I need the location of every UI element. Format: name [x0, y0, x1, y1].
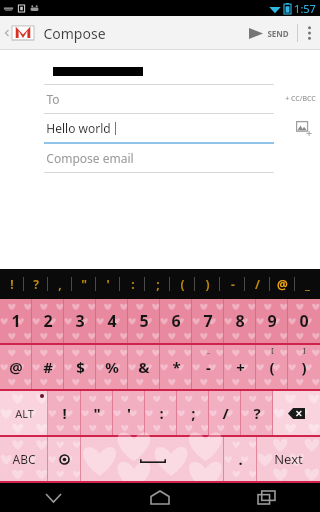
button[interactable]: 5 — [128, 299, 160, 343]
button[interactable]: + CC/BCC — [285, 94, 316, 104]
button[interactable]: 8 — [224, 299, 256, 343]
staticText: [ — [271, 346, 274, 356]
button[interactable]: @ — [0, 345, 32, 389]
staticText: @ — [9, 357, 23, 377]
button[interactable]: 6 — [160, 299, 192, 343]
staticText: SEND — [267, 28, 289, 39]
button[interactable]: + — [224, 345, 256, 389]
staticText: ) — [205, 276, 210, 292]
button[interactable]: % — [96, 345, 128, 389]
button[interactable]: Compose — [2, 22, 110, 44]
button[interactable]: Emoji — [48, 437, 81, 481]
button[interactable]: ; — [145, 269, 170, 299]
staticText: Next — [274, 450, 303, 468]
button[interactable]: ( — [256, 345, 288, 389]
staticText: 8 — [235, 310, 245, 332]
staticText: @ — [277, 276, 288, 292]
staticText: 6 — [171, 310, 181, 332]
button[interactable]: 3 — [64, 299, 96, 343]
button[interactable]: Hide keyboard — [0, 483, 106, 512]
staticText: , — [58, 276, 62, 292]
staticText: 2 — [43, 310, 53, 332]
staticText: 1 — [11, 310, 21, 332]
staticText: ) — [301, 357, 307, 377]
staticText: Compose email — [46, 150, 134, 166]
button[interactable]: : — [120, 269, 145, 299]
button[interactable]: , — [48, 269, 72, 299]
button[interactable]: # — [32, 345, 64, 389]
button[interactable]: ? — [241, 391, 273, 435]
staticText: 4 — [107, 310, 117, 332]
button[interactable]: " — [81, 391, 113, 435]
button[interactable]: _ — [295, 269, 320, 299]
staticText: ; — [191, 403, 196, 423]
button[interactable]: ; — [177, 391, 209, 435]
button[interactable]: 7 — [192, 299, 224, 343]
staticText: " — [81, 276, 87, 292]
staticText: + — [236, 357, 245, 377]
staticText: * — [172, 357, 181, 377]
staticText: # — [43, 357, 53, 377]
staticText: 5 — [139, 310, 149, 332]
button[interactable]: ) — [195, 269, 220, 299]
staticText: ' — [127, 403, 131, 423]
button[interactable]: ( — [170, 269, 195, 299]
button[interactable]: Recent apps — [213, 483, 320, 512]
button[interactable]: ALT — [0, 391, 48, 435]
button[interactable]: Home — [106, 483, 213, 512]
staticText: % — [105, 357, 119, 377]
button[interactable]: / — [245, 269, 270, 299]
staticText: & — [138, 357, 150, 377]
button[interactable]: Next — [257, 437, 320, 481]
staticText: ' — [106, 276, 110, 292]
button[interactable]: . — [224, 437, 257, 481]
staticText: ! — [62, 403, 67, 423]
staticText: ABC — [12, 451, 36, 467]
staticText: : — [131, 276, 135, 292]
button[interactable]: To — [0, 85, 320, 113]
button[interactable]: ) — [288, 345, 320, 389]
staticText: Hello world — [46, 120, 111, 136]
button[interactable]: - — [220, 269, 245, 299]
staticText: 7 — [203, 310, 213, 332]
button[interactable]: More options — [298, 16, 320, 50]
button[interactable]: : — [145, 391, 177, 435]
button[interactable]: 4 — [96, 299, 128, 343]
button[interactable]: Hello world — [0, 114, 320, 142]
staticText: 1:57 — [294, 1, 316, 16]
button[interactable]: ? — [24, 269, 48, 299]
staticText: ALT — [15, 406, 34, 421]
button[interactable]: 2 — [32, 299, 64, 343]
button[interactable]: ABC — [0, 437, 48, 481]
button[interactable]: Delete — [273, 391, 320, 435]
button[interactable]: & — [128, 345, 160, 389]
staticText: ] — [303, 346, 306, 356]
staticText: . — [238, 449, 243, 469]
staticText: " — [93, 403, 101, 423]
button[interactable]: 9 — [256, 299, 288, 343]
staticText: ; — [156, 276, 160, 292]
button[interactable]: 0 — [288, 299, 320, 343]
button[interactable]: Attach image — [294, 118, 314, 138]
button[interactable]: $ — [64, 345, 96, 389]
button[interactable]: - — [192, 345, 224, 389]
button[interactable]: ' — [96, 269, 120, 299]
staticText: 3 — [75, 310, 85, 332]
staticText: To — [46, 91, 60, 107]
button[interactable]: ! — [48, 391, 81, 435]
staticText: _ — [305, 276, 310, 292]
button[interactable]: / — [209, 391, 241, 435]
staticText: ? — [33, 276, 39, 292]
button[interactable]: 1 — [0, 299, 32, 343]
button[interactable]: @ — [270, 269, 295, 299]
button[interactable]: Space — [81, 437, 224, 481]
button[interactable]: ' — [113, 391, 145, 435]
button[interactable]: Compose email — [0, 144, 320, 172]
staticText: ? — [253, 403, 261, 423]
button[interactable]: ! — [0, 269, 24, 299]
button[interactable]: " — [72, 269, 96, 299]
button[interactable]: SEND — [241, 16, 297, 50]
staticText: - — [231, 276, 235, 292]
staticText: ( — [180, 276, 185, 292]
button[interactable]: * — [160, 345, 192, 389]
